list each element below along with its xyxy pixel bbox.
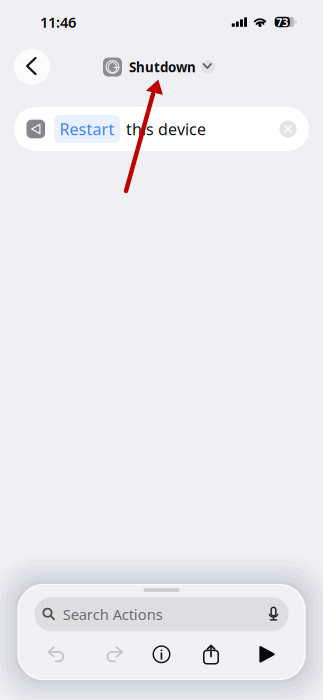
button[interactable]: Share [189, 640, 233, 668]
button[interactable]: Redo [92, 640, 136, 668]
button[interactable]: Run shortcut [245, 640, 289, 668]
staticText: this device [126, 118, 206, 140]
staticText: Shutdown [129, 58, 196, 76]
staticText: 11:46 [40, 12, 76, 32]
staticText: 73 [276, 15, 288, 29]
button[interactable]: Remove action [279, 120, 296, 137]
button[interactable]: Shortcut options [201, 60, 215, 74]
button[interactable]: Dictate [258, 597, 288, 631]
button[interactable]: Undo [34, 640, 78, 668]
button[interactable]: Back [14, 49, 50, 85]
staticText: Restart [60, 118, 115, 140]
staticText: i [159, 645, 163, 663]
button[interactable]: Shortcut details [139, 640, 183, 668]
button[interactable]: Search Actions [34, 597, 288, 631]
staticText: Search Actions [63, 605, 163, 624]
